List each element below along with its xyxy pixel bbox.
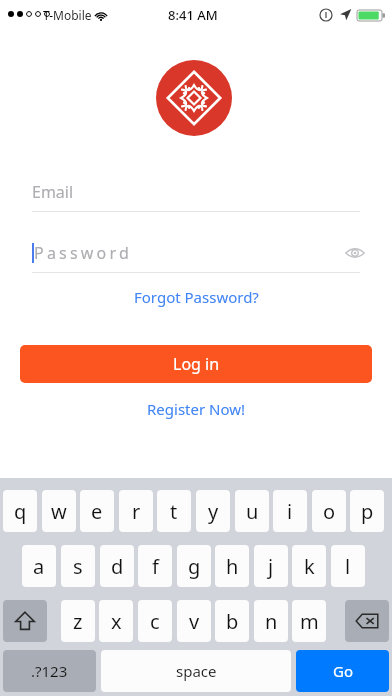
staticText: l (345, 553, 351, 580)
staticText: t (170, 498, 178, 525)
button[interactable]: Numbers (3, 650, 96, 692)
staticText: w (51, 498, 67, 525)
button[interactable]: Shift (3, 600, 47, 642)
staticText: z (73, 608, 83, 635)
staticText: Register Now! (147, 399, 246, 419)
staticText: Email (32, 181, 74, 203)
staticText: u (246, 498, 259, 525)
staticText: h (226, 553, 239, 580)
staticText: e (91, 498, 103, 525)
staticText: s (73, 553, 83, 580)
button[interactable]: s (61, 545, 95, 587)
button[interactable]: n (254, 600, 288, 642)
button[interactable]: t (157, 490, 191, 532)
button[interactable]: z (61, 600, 95, 642)
button[interactable]: y (196, 490, 230, 532)
staticText: x (111, 608, 122, 635)
staticText: p (361, 498, 374, 525)
button[interactable]: l (331, 545, 365, 587)
button[interactable]: Register Now! (130, 396, 262, 422)
staticText: b (226, 608, 239, 635)
staticText: 8:41 AM (168, 6, 218, 24)
staticText: r (132, 498, 141, 525)
staticText: Log in (173, 353, 220, 375)
button[interactable]: Backspace (345, 600, 389, 642)
staticText: v (189, 608, 200, 635)
button[interactable]: Password (32, 233, 360, 273)
staticText: d (111, 553, 124, 580)
button[interactable]: x (99, 600, 133, 642)
staticText: m (300, 608, 319, 635)
staticText: T-Mobile (43, 7, 92, 23)
button[interactable]: i (273, 490, 307, 532)
button[interactable]: o (312, 490, 346, 532)
button[interactable]: e (80, 490, 114, 532)
button[interactable]: k (292, 545, 326, 587)
button[interactable]: m (292, 600, 326, 642)
button[interactable]: Show password (340, 238, 370, 268)
button[interactable]: d (100, 545, 134, 587)
button[interactable]: j (254, 545, 288, 587)
button[interactable]: q (3, 490, 37, 532)
button[interactable]: b (215, 600, 249, 642)
button[interactable]: f (138, 545, 172, 587)
staticText: .?123 (31, 661, 68, 681)
button[interactable]: Email (32, 172, 360, 212)
button[interactable]: h (215, 545, 249, 587)
staticText: a (33, 553, 45, 580)
staticText: j (268, 553, 274, 580)
button[interactable]: c (138, 600, 172, 642)
button[interactable]: w (42, 490, 76, 532)
button[interactable]: v (177, 600, 211, 642)
button[interactable]: g (177, 545, 211, 587)
staticText: k (304, 553, 315, 580)
button[interactable]: Log in (20, 345, 372, 383)
staticText: o (323, 498, 336, 525)
button[interactable]: u (235, 490, 269, 532)
staticText: q (14, 498, 27, 525)
button[interactable]: Go (296, 650, 389, 692)
staticText: f (152, 553, 159, 580)
button[interactable]: p (350, 490, 384, 532)
staticText: space (176, 661, 217, 681)
button[interactable]: Forgot Password? (120, 284, 272, 310)
staticText: Forgot Password? (134, 287, 259, 307)
staticText: i (287, 498, 293, 525)
staticText: Password (34, 242, 132, 264)
staticText: n (265, 608, 278, 635)
staticText: g (188, 553, 201, 580)
staticText: y (208, 498, 219, 525)
button[interactable]: a (22, 545, 56, 587)
button[interactable]: r (119, 490, 153, 532)
staticText: Go (333, 661, 353, 681)
staticText: c (150, 608, 160, 635)
button[interactable]: Space (101, 650, 291, 692)
